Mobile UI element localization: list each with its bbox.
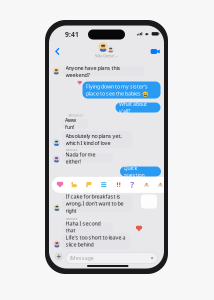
staticText: iMessage bbox=[70, 254, 94, 262]
button[interactable]: Back bbox=[49, 25, 164, 268]
staticText: ? bbox=[130, 179, 134, 190]
staticText: Aww fun! bbox=[65, 116, 76, 131]
staticText: Life's too short to leave a slice behind bbox=[65, 234, 125, 248]
staticText: Silly Geese ⌄ bbox=[95, 53, 118, 58]
staticText: Nada for me either! bbox=[65, 151, 95, 165]
button[interactable]: FaceTime bbox=[49, 25, 164, 268]
staticText: Hank Green bbox=[67, 114, 83, 117]
staticText: Mina Lee bbox=[66, 148, 78, 152]
staticText: Haha I second that bbox=[65, 220, 100, 234]
staticText: Absolutely no plans yet, which I kind of… bbox=[65, 132, 121, 147]
staticText: 9:41 bbox=[65, 30, 79, 39]
button[interactable]: Silly Geese group details bbox=[49, 25, 164, 268]
staticText: If cake for breakfast is wrong, I don't … bbox=[65, 193, 123, 214]
staticText: Mina Lee bbox=[66, 217, 78, 221]
staticText: Anyone have plans this weekend? bbox=[65, 64, 120, 79]
staticText: Flying down to my sister's place to see … bbox=[86, 83, 149, 97]
staticText: What about y'all? bbox=[119, 100, 147, 115]
button[interactable]: Add attachment bbox=[49, 25, 164, 268]
staticText: Quick question bbox=[123, 164, 144, 179]
